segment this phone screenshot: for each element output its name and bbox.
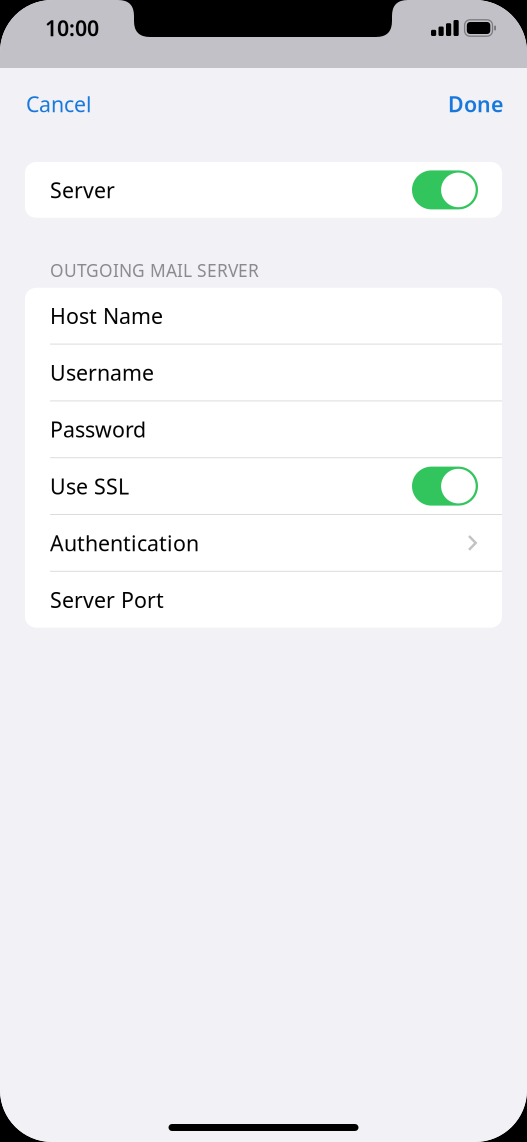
staticText: Server (50, 176, 115, 204)
button[interactable]: Done (448, 78, 503, 130)
staticText: Password (50, 415, 146, 443)
button[interactable]: Username (25, 345, 502, 400)
button[interactable]: Server (25, 162, 502, 218)
button[interactable]: Server Port (25, 572, 502, 628)
staticText: Cancel (26, 90, 92, 118)
button[interactable]: Host Name (25, 288, 502, 344)
staticText: Use SSL (50, 472, 129, 500)
button[interactable]: Authentication (25, 515, 502, 571)
staticText: Host Name (50, 302, 163, 330)
staticText: Server Port (50, 586, 164, 614)
staticText: Authentication (50, 529, 199, 557)
button[interactable]: Password (25, 401, 502, 457)
button[interactable]: Cancel (26, 78, 92, 130)
button[interactable]: Use SSL (25, 458, 502, 514)
staticText: OUTGOING MAIL SERVER (50, 259, 259, 282)
staticText: Username (50, 358, 154, 387)
staticText: 10:00 (45, 14, 99, 42)
staticText: Done (448, 90, 503, 118)
